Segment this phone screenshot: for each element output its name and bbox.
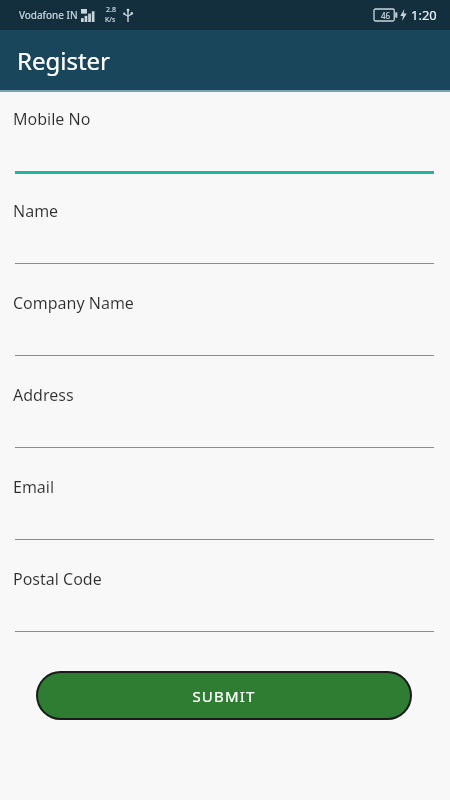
staticText: Name [13,200,59,222]
staticText: Address [13,384,74,406]
button[interactable]: Company Name [0,280,450,372]
staticText: 1:20 [411,6,437,24]
button[interactable]: Postal Code [0,556,450,648]
staticText: Postal Code [13,568,102,590]
staticText: Email [13,476,55,498]
staticText: SUBMIT [192,686,256,706]
staticText: 2.8 [106,5,116,15]
button[interactable]: Address [0,372,450,464]
staticText: Company Name [13,292,134,314]
button[interactable]: Mobile No [0,96,450,188]
button[interactable]: Name [0,188,450,280]
staticText: Vodafone IN [19,8,78,22]
staticText: 46 [381,10,391,21]
staticText: Mobile No [13,108,91,130]
staticText: Register [17,44,111,77]
button[interactable]: SUBMIT [38,673,410,718]
button[interactable]: Email [0,464,450,556]
staticText: K/s [105,15,116,25]
